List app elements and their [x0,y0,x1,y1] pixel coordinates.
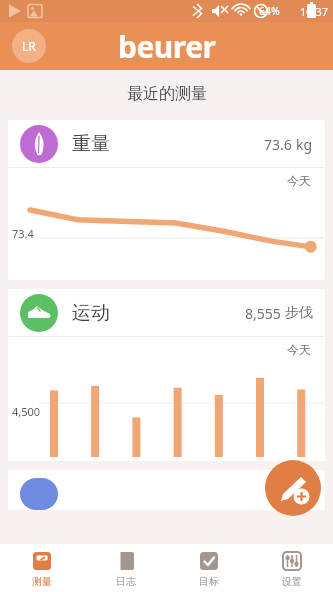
button[interactable] [8,470,325,510]
staticText: 设置 [282,575,302,588]
staticText: 73.6 [264,135,292,154]
staticText: beurer [118,26,216,67]
button[interactable]: Profile LR [12,29,46,63]
staticText: 今天 [287,342,311,357]
staticText: LR [22,38,36,54]
staticText: 4,500 [12,404,41,419]
staticText: 测量 [32,575,52,588]
button[interactable]: 日志 [84,544,167,592]
staticText: 运动 [72,301,110,325]
staticText: 8,555 [245,304,281,323]
button[interactable]: 目标 [167,544,250,592]
staticText: 10:37 [300,4,329,19]
button[interactable]: 设置 [250,544,333,592]
staticText: 目标 [199,575,219,588]
staticText: kg [296,135,313,154]
button[interactable]: 重量 [8,120,325,280]
staticText: 今天 [287,173,311,188]
staticText: 步伐 [285,304,313,322]
button[interactable]: Add measurement [265,460,321,516]
staticText: 重量 [72,132,110,156]
button[interactable]: 测量 [0,544,84,592]
staticText: 64% [259,4,280,18]
staticText: 73.4 [12,226,34,241]
staticText: 最近的测量 [127,84,207,104]
button[interactable]: 运动 [8,289,325,461]
staticText: 日志 [116,575,136,588]
